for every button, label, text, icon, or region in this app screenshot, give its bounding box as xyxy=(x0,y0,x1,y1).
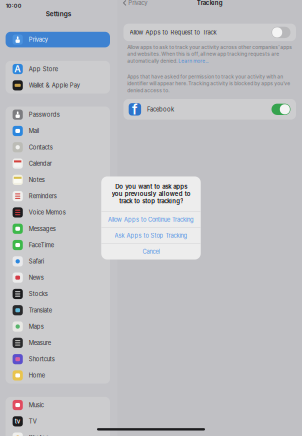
button[interactable]: Home xyxy=(6,367,110,384)
staticText: Photos xyxy=(29,434,49,436)
button[interactable]: Notes xyxy=(6,172,110,188)
staticText: Privacy xyxy=(128,0,147,6)
button[interactable]: Calendar xyxy=(6,155,110,172)
button[interactable]: Maps xyxy=(6,318,110,335)
staticText: Translate xyxy=(29,307,52,314)
button[interactable]: Cancel xyxy=(101,243,201,259)
staticText: Reminders xyxy=(29,193,57,200)
staticText: tv xyxy=(15,418,21,425)
staticText: 10:00 xyxy=(6,2,22,9)
staticText: automatically denied. xyxy=(127,58,178,64)
staticText: Maps xyxy=(29,323,44,330)
button[interactable]: Ask Apps to Stop Tracking xyxy=(101,227,201,243)
button[interactable]: News xyxy=(6,269,110,286)
staticText: Measure xyxy=(29,339,51,346)
staticText: denied access to. xyxy=(127,87,169,93)
staticText: Tracking xyxy=(197,0,223,6)
button[interactable]: Contacts xyxy=(6,139,110,155)
staticText: Do you want to ask apps you previously a… xyxy=(111,183,190,205)
staticText: identifier will appear here. Tracking ac… xyxy=(127,81,290,87)
staticText: FaceTime xyxy=(29,241,54,249)
button[interactable]: Reminders xyxy=(6,188,110,204)
staticText: Notes xyxy=(29,176,45,183)
button[interactable]: Photos xyxy=(6,429,110,436)
staticText: Facebook xyxy=(147,106,174,113)
staticText: Voice Memos xyxy=(29,209,66,216)
staticText: Shortcuts xyxy=(29,356,55,363)
button[interactable]: Allow Apps to Request to Track, off xyxy=(271,27,290,38)
button[interactable]: FaceTime xyxy=(6,237,110,253)
button[interactable]: f xyxy=(117,99,302,120)
button[interactable]: Measure xyxy=(6,335,110,351)
button[interactable]: A xyxy=(6,61,110,77)
staticText: Allow apps to ask to track your activity… xyxy=(127,44,292,50)
staticText: A xyxy=(14,64,21,74)
staticText: f xyxy=(132,101,138,118)
staticText: Calendar xyxy=(29,160,52,167)
button[interactable]: Allow Apps to Request to Track xyxy=(117,24,302,41)
staticText: App Store xyxy=(29,65,58,73)
staticText: Messages xyxy=(29,225,56,232)
button[interactable]: Wallet & Apple Pay xyxy=(6,77,110,93)
staticText: Allow Apps to Request to Track xyxy=(129,29,216,36)
staticText: Stocks xyxy=(29,290,48,297)
staticText: Settings xyxy=(46,10,72,18)
staticText: Allow Apps to Continue Tracking xyxy=(108,216,194,223)
staticText: Contacts xyxy=(29,144,53,151)
button[interactable]: Music xyxy=(6,397,110,413)
button[interactable]: Messages xyxy=(6,221,110,237)
button[interactable]: Allow Apps to Continue Tracking xyxy=(101,211,201,227)
button[interactable]: Mail xyxy=(6,123,110,139)
staticText: Privacy xyxy=(29,36,48,43)
staticText: Ask Apps to Stop Tracking xyxy=(114,232,187,239)
button[interactable]: Voice Memos xyxy=(6,204,110,221)
button[interactable]: Privacy xyxy=(117,0,147,8)
staticText: Wallet & Apple Pay xyxy=(29,82,80,89)
staticText: Learn more... xyxy=(178,58,208,64)
staticText: News xyxy=(29,274,44,281)
staticText: and websites. When this is off, all new … xyxy=(127,51,279,57)
button[interactable]: Learn more... xyxy=(178,58,208,64)
staticText: Mail xyxy=(29,127,39,134)
button[interactable]: Translate xyxy=(6,302,110,318)
staticText: Passwords xyxy=(29,111,60,118)
staticText: Home xyxy=(29,372,45,379)
staticText: Music xyxy=(29,401,44,409)
button[interactable]: Stocks xyxy=(6,286,110,302)
button[interactable]: tv xyxy=(6,413,110,429)
staticText: Safari xyxy=(29,258,44,265)
button[interactable]: Shortcuts xyxy=(6,351,110,367)
button[interactable]: Passwords xyxy=(6,106,110,123)
staticText: Apps that have asked for permission to t… xyxy=(127,74,283,80)
button[interactable]: Privacy xyxy=(0,32,117,47)
staticText: Cancel xyxy=(142,248,159,255)
button[interactable]: Safari xyxy=(6,253,110,269)
button[interactable]: Facebook tracking, on xyxy=(271,104,290,115)
staticText: TV xyxy=(29,418,37,425)
